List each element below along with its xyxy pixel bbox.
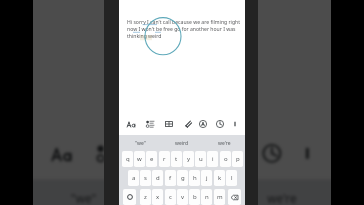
staticText: m	[217, 193, 223, 201]
button[interactable]: a	[128, 170, 139, 186]
button[interactable]: z	[140, 189, 151, 205]
staticText: o	[224, 155, 228, 163]
button[interactable]: f	[165, 170, 176, 186]
button[interactable]: s	[140, 170, 151, 186]
button[interactable]: Draw	[195, 114, 210, 134]
staticText: p	[236, 155, 240, 163]
button[interactable]: Checklist	[87, 130, 123, 177]
staticText: e	[150, 155, 154, 163]
button[interactable]: More options	[227, 114, 242, 134]
staticText: thinking weird	[127, 33, 162, 40]
button[interactable]: Checklist	[142, 114, 157, 134]
button[interactable]: Format text	[124, 114, 139, 134]
button[interactable]: m	[214, 189, 225, 205]
staticText: k	[218, 174, 222, 182]
staticText: w	[137, 155, 142, 163]
button[interactable]: l	[226, 170, 237, 186]
button[interactable]: More options	[288, 130, 324, 177]
staticText: q	[126, 155, 130, 163]
staticText: v	[181, 193, 185, 201]
staticText: b	[193, 193, 197, 201]
staticText: weird	[165, 191, 198, 205]
button[interactable]: v	[177, 189, 188, 205]
staticText: f	[169, 174, 172, 182]
button[interactable]: we're	[232, 184, 331, 205]
button[interactable]: k	[214, 170, 225, 186]
button[interactable]: Attach	[180, 114, 195, 134]
staticText: j	[206, 174, 208, 182]
button[interactable]: p	[232, 151, 243, 167]
button[interactable]: n	[201, 189, 212, 205]
button[interactable]: h	[189, 170, 200, 186]
button[interactable]: Reminder	[253, 130, 288, 177]
staticText: weird	[175, 140, 189, 147]
button[interactable]: Shift	[123, 189, 136, 205]
button[interactable]: "we"	[119, 137, 161, 150]
staticText: a	[132, 174, 136, 182]
button[interactable]: e	[146, 151, 157, 167]
staticText: x	[156, 193, 160, 201]
staticText: t	[175, 155, 178, 163]
staticText: s	[144, 174, 147, 182]
button[interactable]: c	[165, 189, 176, 205]
staticText: d	[156, 174, 160, 182]
button[interactable]: j	[201, 170, 212, 186]
button[interactable]: i	[207, 151, 218, 167]
staticText: y	[187, 155, 191, 163]
button[interactable]: Format text	[45, 130, 80, 177]
staticText: l	[231, 174, 233, 182]
button[interactable]: w	[134, 151, 145, 167]
staticText: i	[212, 155, 214, 163]
button[interactable]: "we"	[33, 184, 132, 205]
button[interactable]: d	[152, 170, 163, 186]
button[interactable]: y	[183, 151, 194, 167]
staticText: n	[205, 193, 209, 201]
staticText: h	[193, 174, 197, 182]
button[interactable]: o	[220, 151, 231, 167]
staticText: now I won't be free go for another hour …	[127, 26, 236, 33]
button[interactable]: weird	[132, 184, 232, 205]
staticText: "we"	[135, 140, 146, 147]
staticText: r	[163, 155, 166, 163]
button[interactable]: Reminder	[212, 114, 227, 134]
button[interactable]: Table	[161, 114, 176, 134]
button[interactable]: Table	[132, 130, 168, 177]
staticText: u	[199, 155, 203, 163]
staticText: z	[144, 193, 147, 201]
button[interactable]: we're	[203, 137, 245, 150]
staticText: g	[181, 174, 185, 182]
button[interactable]: Draw	[213, 130, 248, 177]
button[interactable]: weird	[161, 137, 203, 150]
button[interactable]: g	[177, 170, 188, 186]
button[interactable]: t	[171, 151, 182, 167]
button[interactable]: Backspace	[228, 189, 241, 205]
button[interactable]: u	[195, 151, 206, 167]
button[interactable]: b	[189, 189, 200, 205]
staticText: c	[169, 193, 172, 201]
staticText: we're	[267, 191, 298, 205]
staticText: we're	[218, 140, 231, 147]
button[interactable]: r	[159, 151, 170, 167]
button[interactable]: q	[122, 151, 133, 167]
staticText: Hi sorry I can't call because we are fil…	[127, 19, 241, 26]
button[interactable]: x	[152, 189, 163, 205]
staticText: "we"	[71, 191, 97, 205]
button[interactable]: Attach	[177, 130, 213, 177]
